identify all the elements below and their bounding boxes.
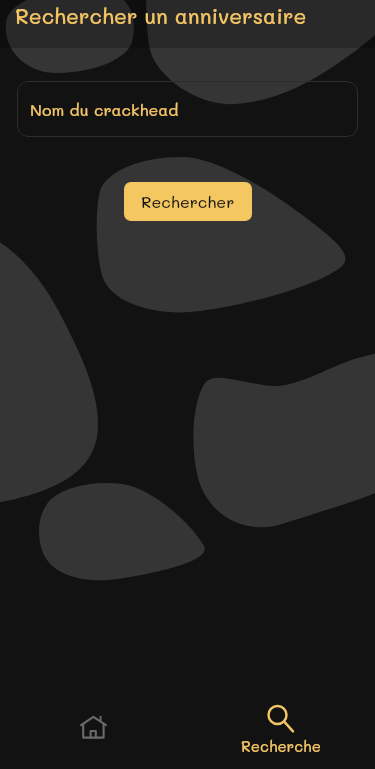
button[interactable]: Rechercher: [124, 182, 252, 221]
button[interactable]: Recherche: [187, 690, 375, 769]
staticText: Rechercher un anniversaire: [15, 2, 307, 29]
staticText: Rechercher: [141, 191, 235, 212]
staticText: Recherche: [241, 736, 321, 755]
staticText: Nom du crackhead: [30, 99, 179, 120]
button[interactable]: Nom du crackhead: [17, 81, 358, 137]
button[interactable]: Accueil: [0, 690, 188, 769]
